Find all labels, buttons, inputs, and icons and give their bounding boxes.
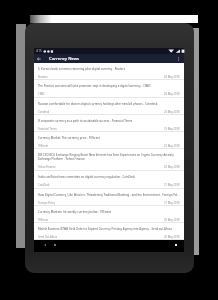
staticText: Currency Markets: hit weekly currency be… [38, 210, 112, 214]
staticText: Mobile Business BTWA Field Order to Expa… [38, 227, 172, 231]
staticText: 4:15 [36, 49, 42, 53]
staticText: 24 May 2018 [164, 92, 180, 96]
staticText: How Digital Currency, Like Bitcoin is Th… [38, 193, 180, 197]
button[interactable]: S. Korea's bank connects returning pilot… [34, 63, 184, 80]
button[interactable]: Back [42, 242, 47, 247]
button[interactable]: Russian comfortable for devices digital … [34, 98, 184, 115]
staticText: If corporate currency as a path to susta… [38, 119, 133, 123]
staticText: Coindesk [38, 110, 50, 114]
staticText: CoinDesk [38, 183, 50, 187]
staticText: FXStreet [38, 144, 49, 148]
staticText: Send Out Africa [38, 235, 57, 239]
staticText: India conflicted new committee on digita… [38, 175, 136, 179]
staticText: Russian comfortable for devices digital … [38, 102, 158, 106]
staticText: 21 May 2018 [164, 201, 180, 205]
staticText: CNBC [38, 92, 45, 96]
staticText: 20 May 2018 [164, 218, 180, 222]
staticText: S. Korea's bank connects returning pilot… [38, 67, 126, 71]
button[interactable]: India conflicted new committee on digita… [34, 171, 184, 189]
staticText: FXStreet [38, 218, 49, 222]
button[interactable]: More options [174, 54, 183, 63]
staticText: 24 May 2018 [164, 75, 180, 79]
button[interactable]: Currency Market: The currency price - FX… [34, 132, 184, 149]
staticText: Yahoo Finance [38, 165, 56, 169]
button[interactable]: Recent apps [173, 242, 178, 247]
staticText: 23 May 2018 [164, 110, 180, 114]
button[interactable]: Back [34, 54, 43, 63]
button[interactable]: Currency Markets: hit weekly currency be… [34, 206, 184, 223]
button[interactable]: Mobile Business BTWA Field Order to Expa… [34, 223, 184, 240]
staticText: The Positive outcome will take promoter … [38, 84, 151, 88]
staticText: 20 May 2018 [164, 235, 180, 239]
button[interactable]: If corporate currency as a path to susta… [34, 115, 184, 132]
staticText: Reuters [38, 75, 48, 79]
button[interactable]: Home [52, 242, 57, 247]
button[interactable]: BIS CEO BCG Exchange Ringing Brexit New … [34, 149, 184, 171]
staticText: 22 May 2018 [164, 144, 180, 148]
staticText: BIS CEO BCG Exchange Ringing Brexit New … [38, 153, 180, 161]
staticText: 23 May 2018 [164, 127, 180, 131]
staticText: 21 May 2018 [164, 183, 180, 187]
button[interactable]: The Positive outcome will take promoter … [34, 80, 184, 98]
staticText: Financial Times [38, 127, 57, 131]
button[interactable]: How Digital Currency, Like Bitcoin is Th… [34, 189, 184, 206]
staticText: Currency Market: The currency price - FX… [38, 136, 100, 140]
staticText: Foreign Policy [38, 201, 55, 205]
staticText: 22 May 2018 [164, 165, 180, 169]
staticText: Currency News [49, 56, 80, 62]
